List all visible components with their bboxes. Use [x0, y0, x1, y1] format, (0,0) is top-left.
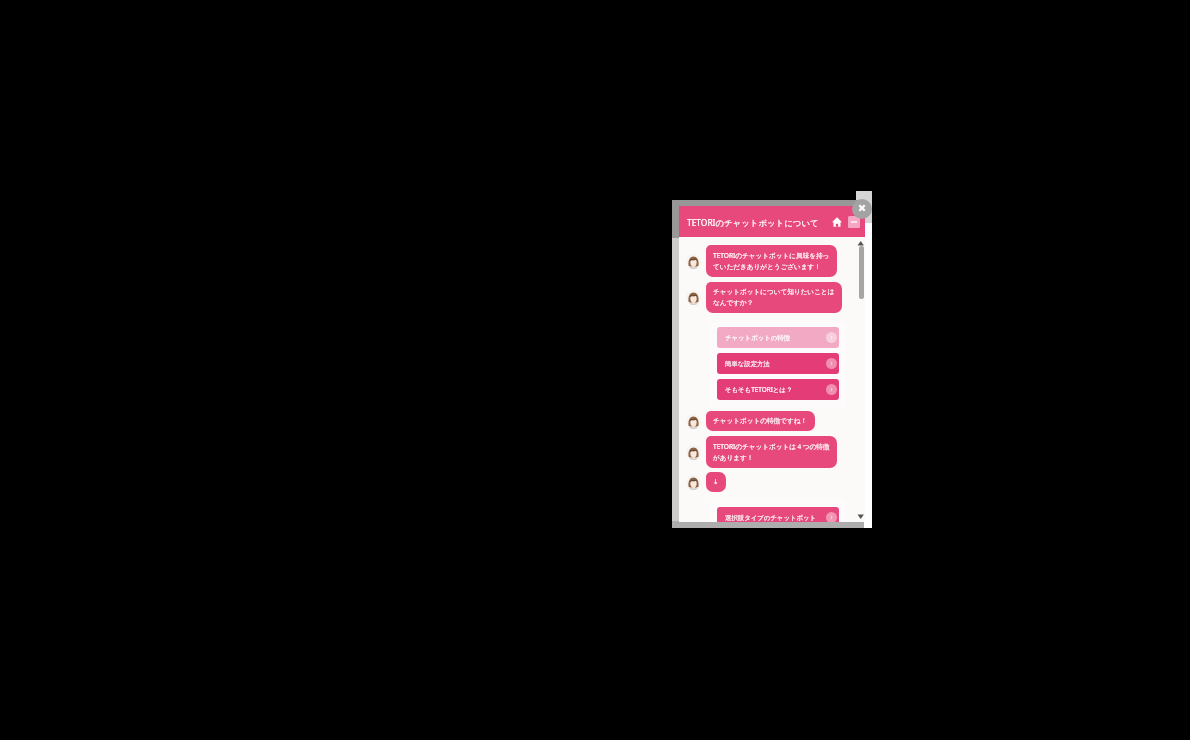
staticText: 簡単な設定方法 [725, 360, 770, 368]
button[interactable]: 簡単な設定方法 [717, 353, 839, 374]
staticText: TETORIのチャットボットに興味を持っ ていただきありがとうございます！ [713, 251, 830, 271]
staticText: ↓ [713, 478, 719, 486]
button[interactable]: そもそもTETORIとは？ [717, 379, 839, 400]
staticText: チャットボットの特徴 [725, 334, 791, 342]
button[interactable]: Home [830, 215, 843, 228]
button[interactable]: チャットボットの特徴 [717, 327, 839, 348]
staticText: チャットボットの特徴ですね！ [713, 417, 808, 425]
button[interactable]: Minimize [848, 216, 860, 228]
staticText: チャットボットについて知りたいことは なんですか？ [713, 288, 835, 307]
button[interactable]: Close [852, 199, 872, 219]
staticText: TETORIのチャットボットは４つの特徴 があります！ [713, 442, 830, 462]
staticText: そもそもTETORIとは？ [725, 385, 793, 394]
staticText: 選択肢タイプのチャットボット [725, 514, 817, 522]
staticText: TETORIのチャットボットについて [687, 217, 819, 228]
button[interactable]: 選択肢タイプのチャットボット [717, 507, 839, 522]
